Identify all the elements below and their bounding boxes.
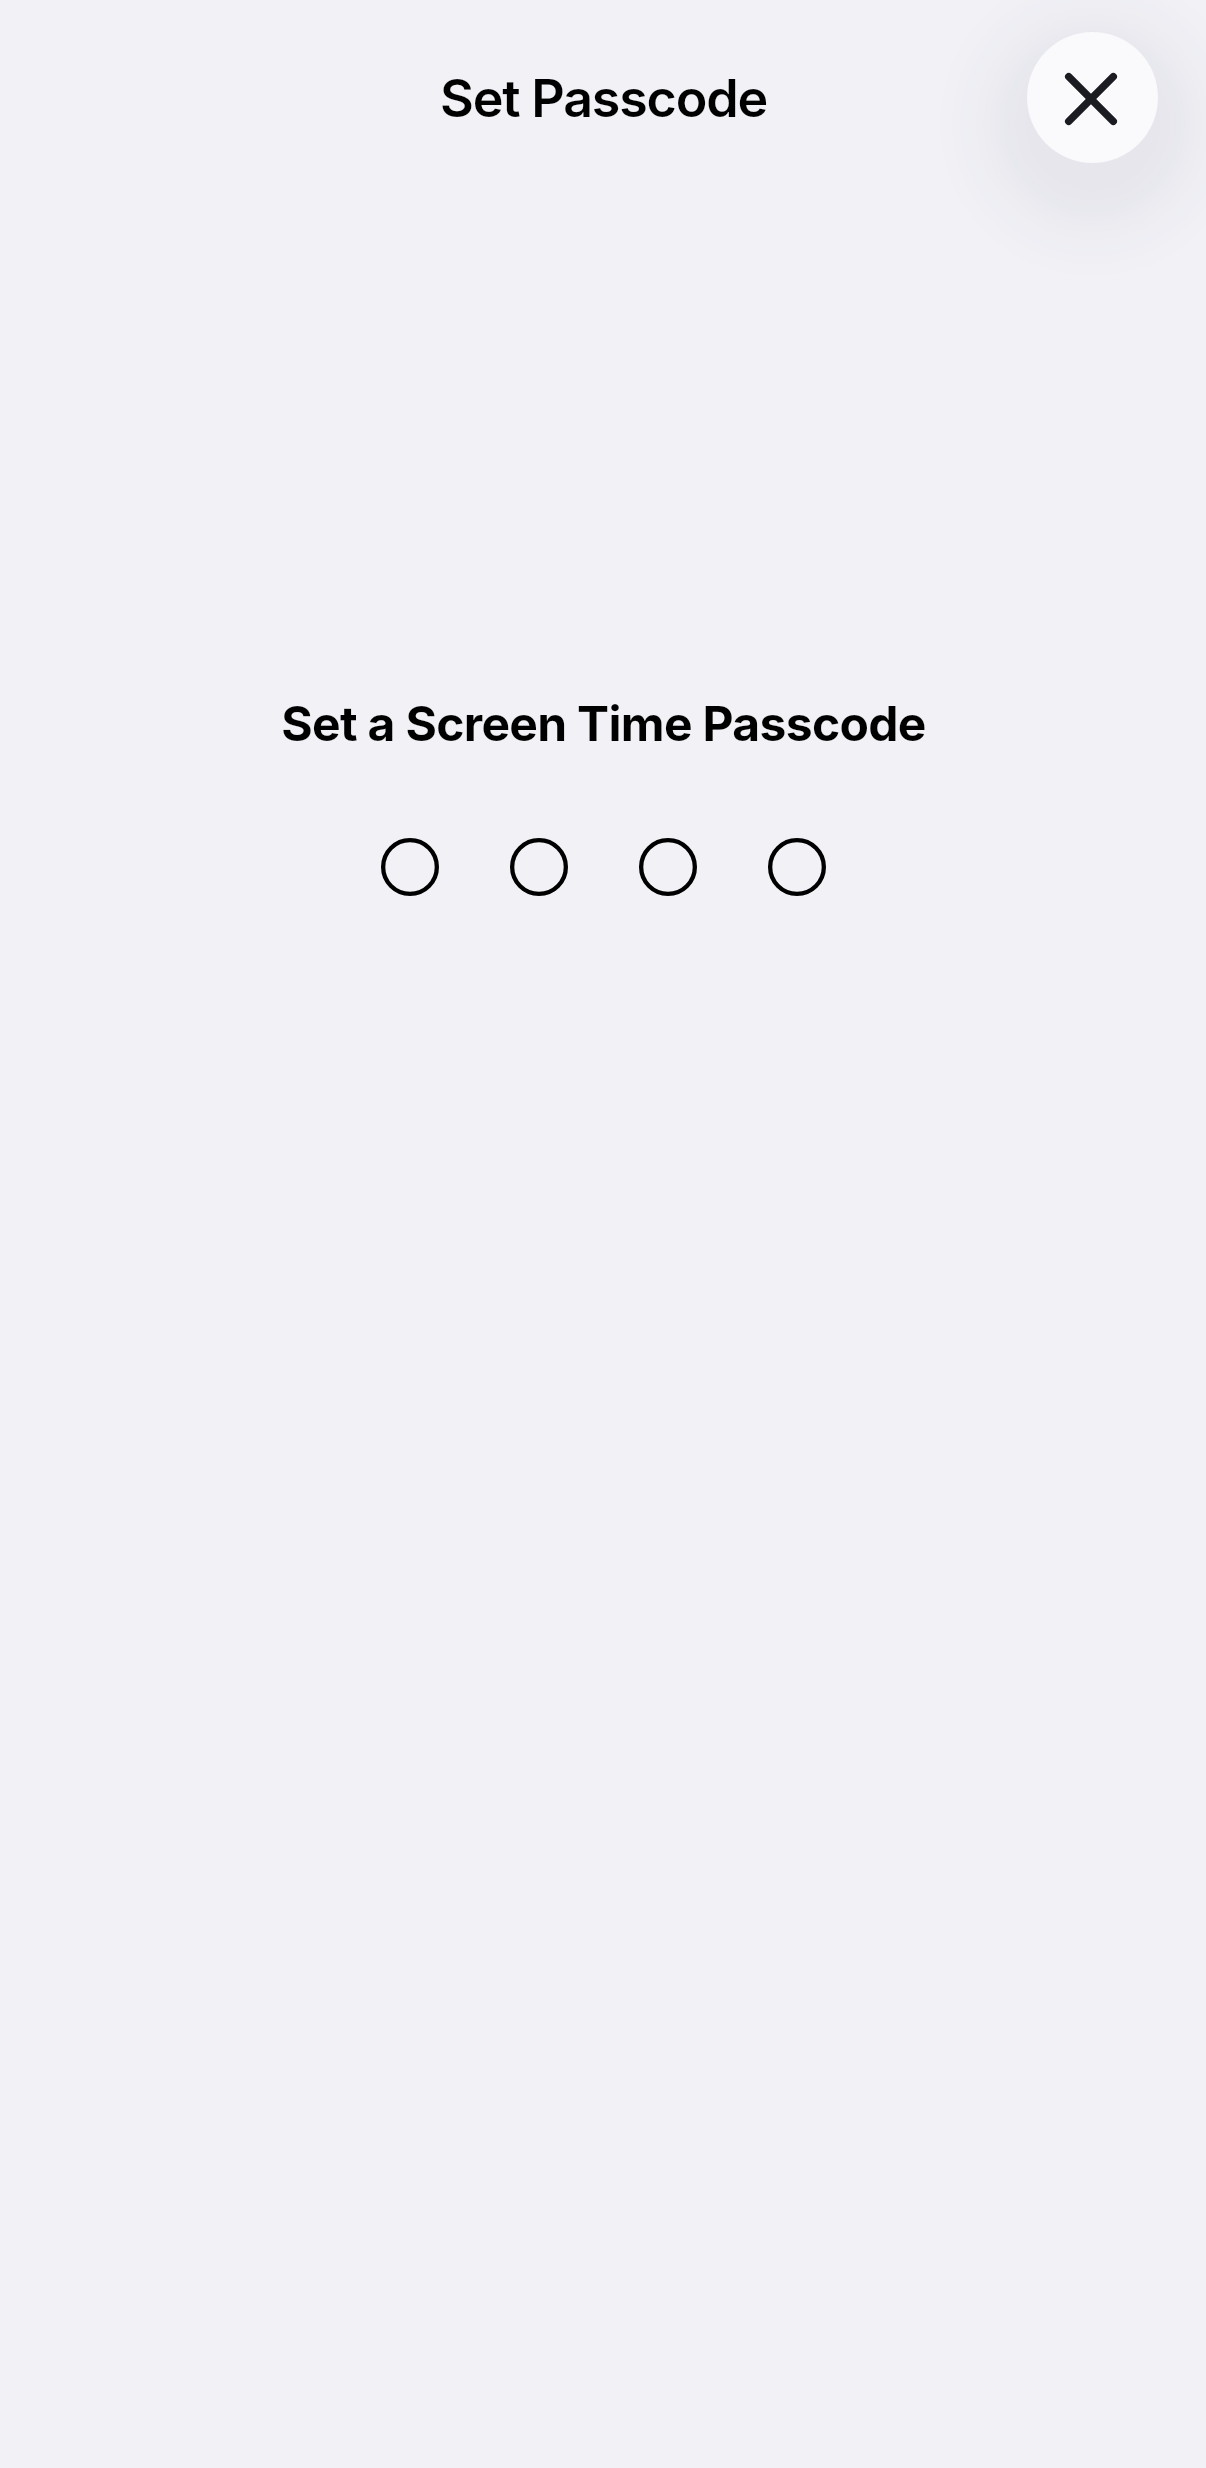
staticText: Set a Screen Time Passcode xyxy=(281,694,926,752)
staticText: Set Passcode xyxy=(440,67,767,130)
button[interactable]: Close xyxy=(1027,32,1158,163)
other: Passcode entry, 4 digits xyxy=(381,838,826,896)
